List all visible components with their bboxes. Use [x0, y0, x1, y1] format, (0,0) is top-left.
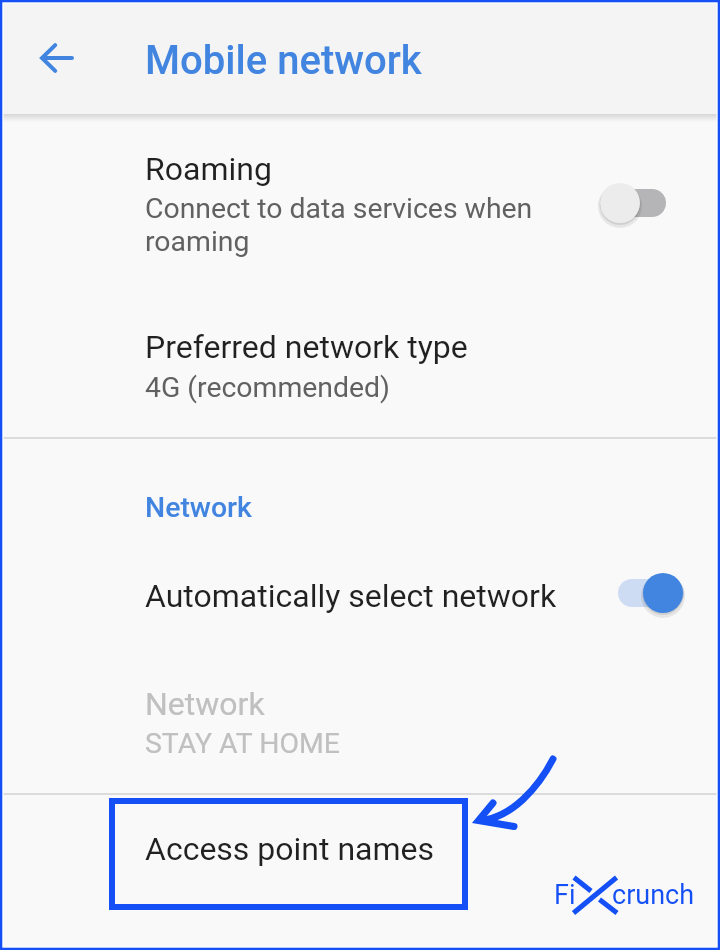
staticText: Connect to data services when roaming — [145, 192, 533, 258]
button[interactable]: Navigate up — [33, 34, 81, 82]
staticText: 4G (recommended) — [145, 371, 391, 404]
button[interactable]: Access point names — [0, 795, 720, 905]
staticText: Fi — [554, 879, 576, 911]
staticText: Mobile network — [145, 37, 422, 84]
staticText: Preferred network type — [145, 328, 468, 366]
staticText: Access point names — [145, 830, 435, 868]
button[interactable]: Roaming off — [592, 175, 688, 231]
staticText: STAY AT HOME — [145, 727, 340, 760]
button[interactable]: Preferred network type — [0, 292, 720, 437]
button[interactable]: Automatically select network — [0, 542, 720, 650]
button[interactable]: Roaming — [0, 114, 720, 292]
staticText: Roaming — [145, 150, 272, 188]
staticText: Network — [145, 685, 265, 723]
staticText: crunch — [612, 879, 695, 911]
staticText: Automatically select network — [145, 577, 557, 615]
staticText: Network — [145, 491, 252, 524]
button[interactable]: Automatically select network on — [592, 565, 688, 621]
